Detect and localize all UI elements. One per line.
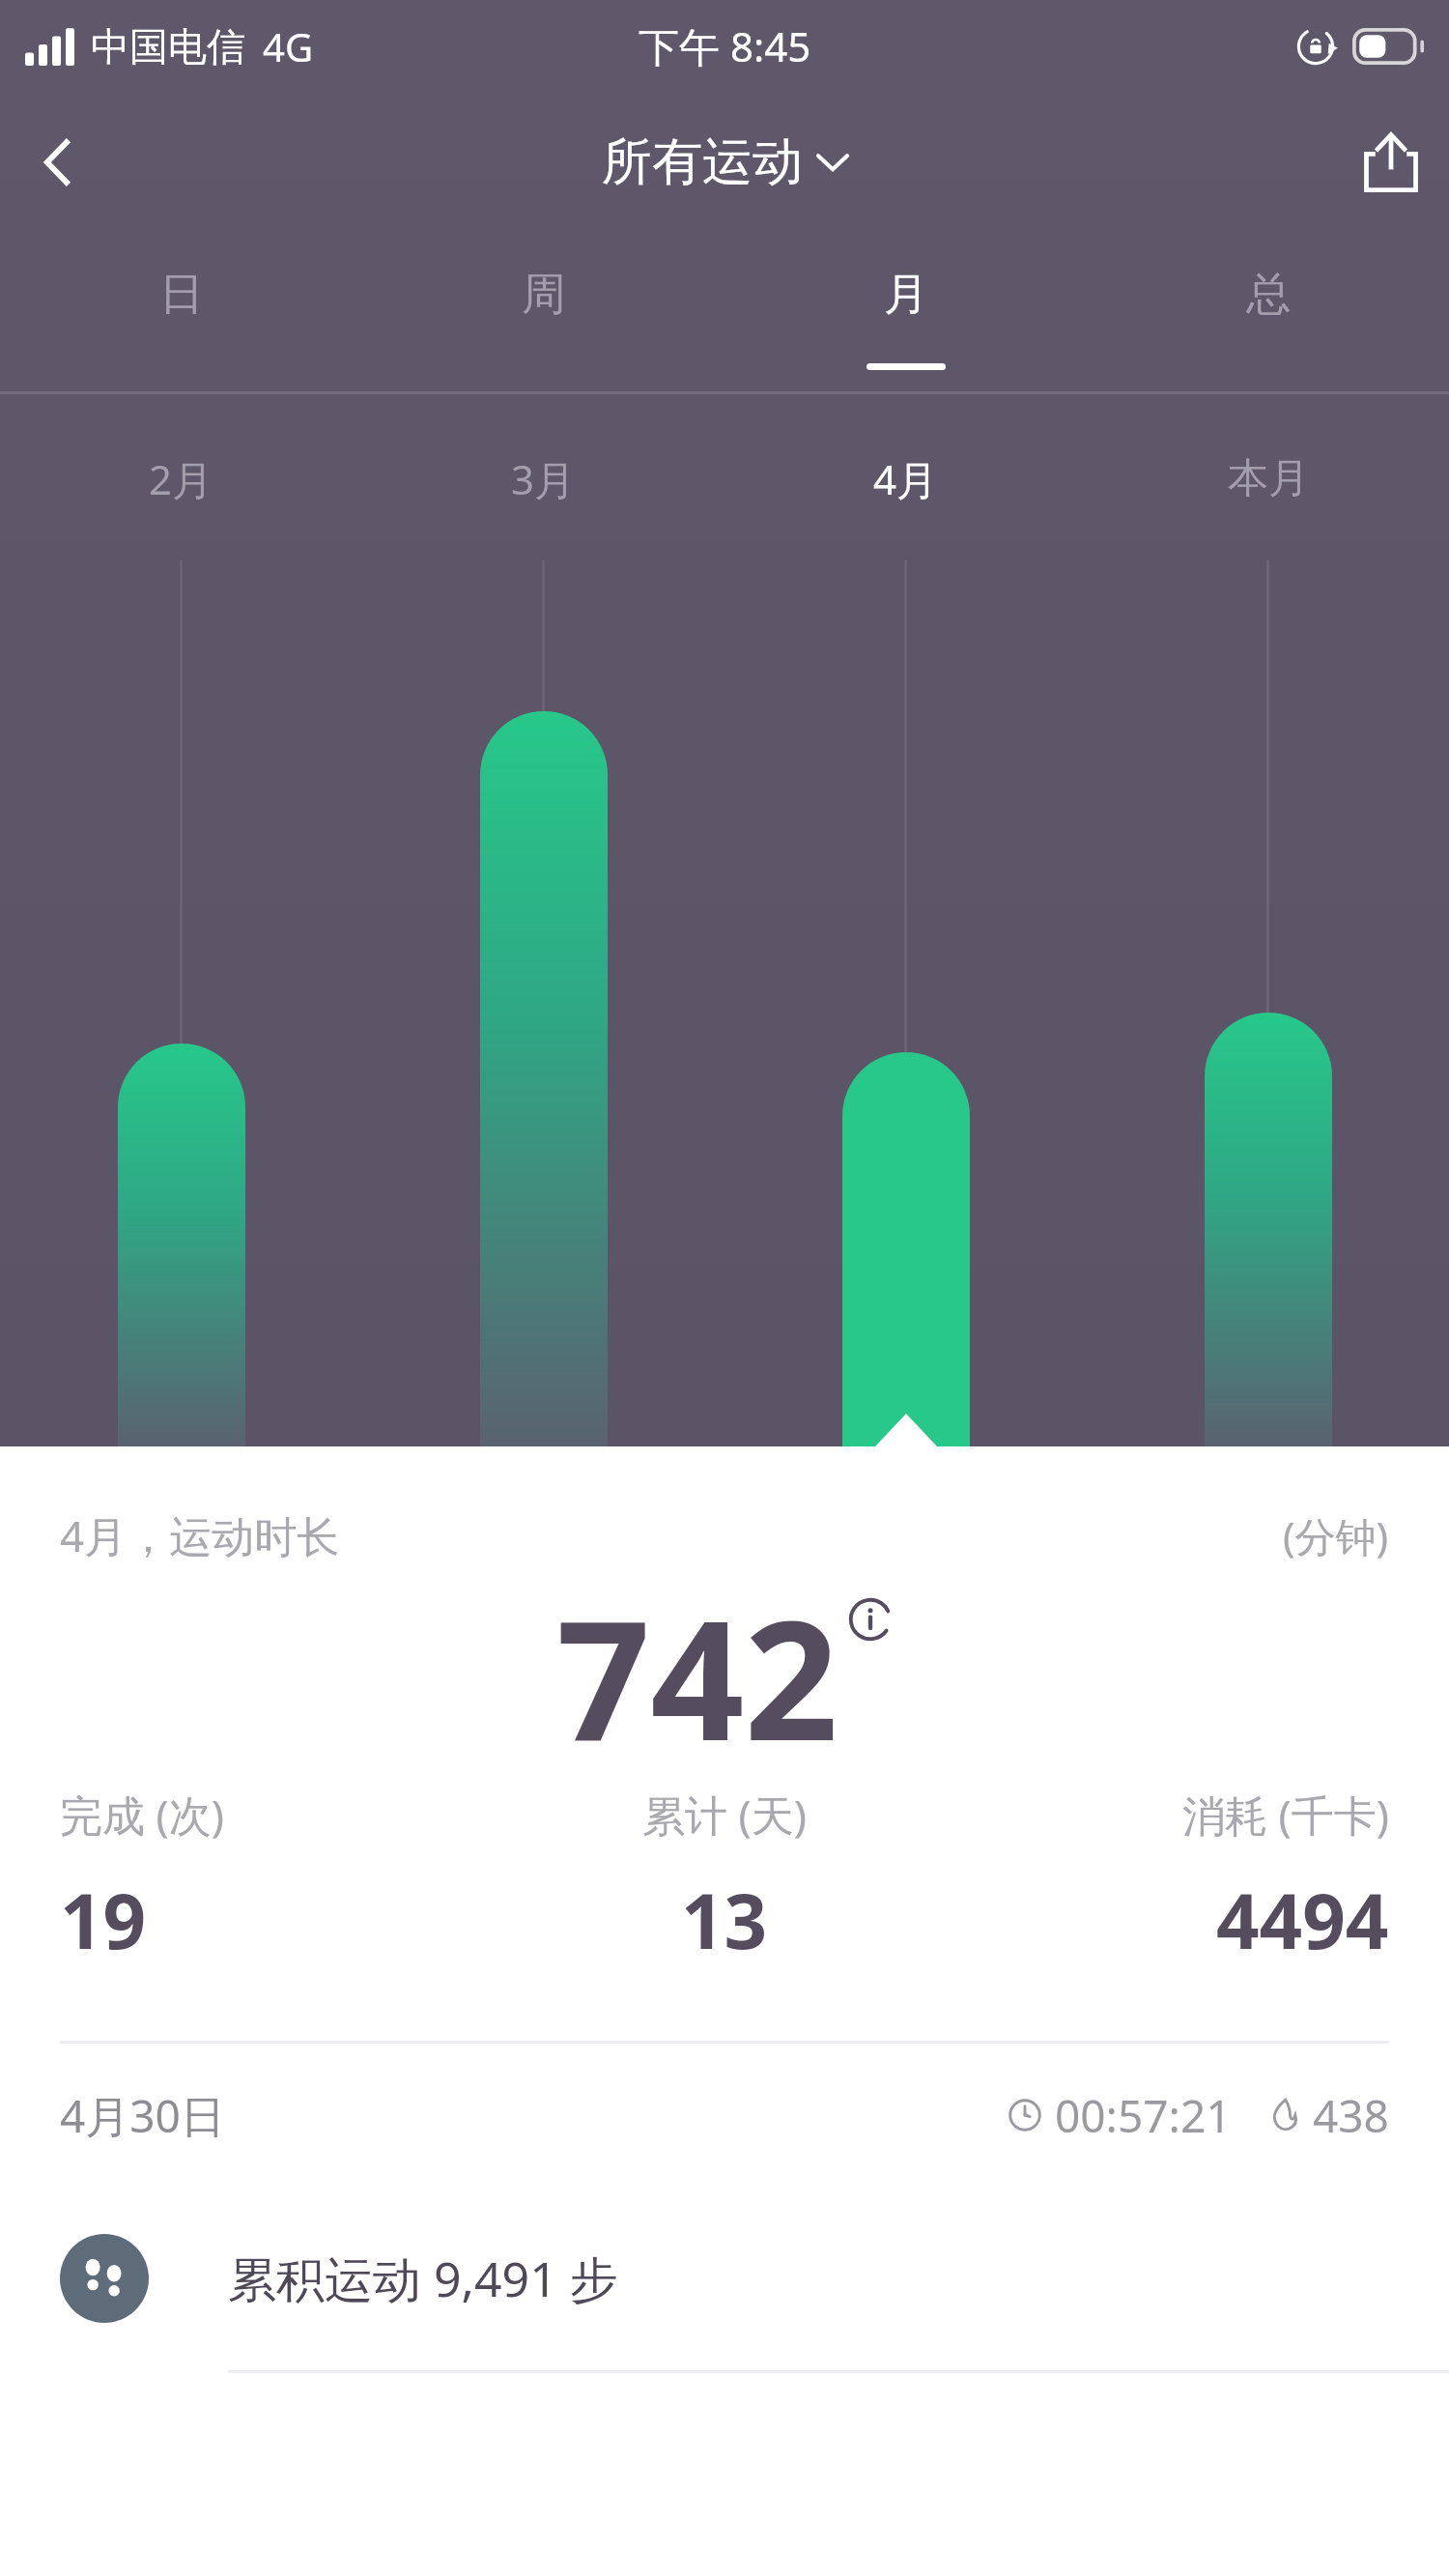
staticText: 总 (1246, 267, 1291, 323)
staticText: 3月 (511, 451, 576, 506)
staticText: 本月 (1228, 453, 1309, 504)
staticText: 周 (522, 267, 566, 323)
button[interactable] (1087, 560, 1449, 1446)
staticText: 4494 (1216, 1869, 1389, 1971)
button[interactable]: 周 (362, 232, 724, 394)
staticText: 742 (556, 1564, 838, 1772)
staticText: 月 (884, 267, 928, 323)
button[interactable]: Share (1333, 104, 1449, 220)
staticText: 完成 (次) (60, 1786, 224, 1844)
staticText: 13 (681, 1869, 768, 1971)
button[interactable]: 累积运动 9,491 步 (0, 2187, 1449, 2370)
button[interactable]: Back (0, 104, 116, 220)
staticText: 2月 (149, 451, 213, 506)
staticText: 中国电信 (91, 22, 245, 71)
staticText: 4月 (873, 451, 938, 506)
staticText: 下午 8:45 (639, 18, 811, 73)
button[interactable]: 所有运动 (592, 125, 857, 200)
staticText: 所有运动 (602, 130, 803, 194)
button[interactable] (0, 560, 362, 1446)
staticText: 4G (263, 20, 313, 72)
button[interactable]: 总 (1087, 232, 1449, 394)
staticText: 4月30日 (60, 2085, 225, 2146)
button[interactable]: 月 (724, 232, 1087, 394)
staticText: 消耗 (千卡) (1182, 1786, 1389, 1844)
staticText: 日 (159, 267, 204, 323)
staticText: 累计 (天) (642, 1786, 807, 1844)
staticText: 4月，运动时长 (60, 1506, 340, 1564)
staticText: 累积运动 9,491 步 (228, 2246, 618, 2311)
button[interactable]: Info (848, 1597, 893, 1642)
button[interactable] (362, 560, 724, 1446)
staticText: 19 (60, 1869, 147, 1971)
button[interactable] (724, 560, 1087, 1446)
staticText: 438 (1313, 2085, 1389, 2146)
staticText: (分钟) (1283, 1508, 1389, 1563)
button[interactable]: 日 (0, 232, 362, 394)
staticText: 00:57:21 (1055, 2085, 1232, 2146)
